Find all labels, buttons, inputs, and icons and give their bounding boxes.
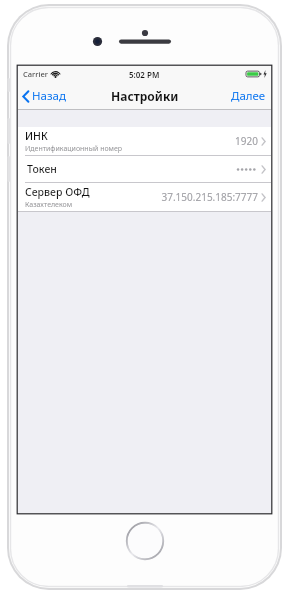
staticText: Казахтелеком — [25, 200, 73, 210]
staticText: Назад — [32, 88, 66, 104]
staticText: Идентификационный номер — [25, 144, 123, 154]
button[interactable]: Токен — [18, 156, 271, 182]
staticText: 37.150.215.185:7777 — [161, 190, 258, 204]
button[interactable]: Сервер ОФД — [18, 183, 271, 211]
staticText: ИНК — [25, 129, 48, 143]
staticText: Сервер ОФД — [25, 185, 90, 199]
staticText: Carrier — [23, 69, 48, 79]
button[interactable]: ИНК — [18, 127, 271, 155]
staticText: 5:02 PM — [129, 69, 160, 80]
staticText: Далее — [231, 88, 266, 104]
staticText: 1920 — [235, 134, 258, 148]
staticText: Токен — [27, 162, 57, 176]
button[interactable]: Назад — [18, 84, 74, 108]
staticText: Настройки — [111, 88, 179, 104]
button[interactable]: Далее — [223, 84, 271, 108]
